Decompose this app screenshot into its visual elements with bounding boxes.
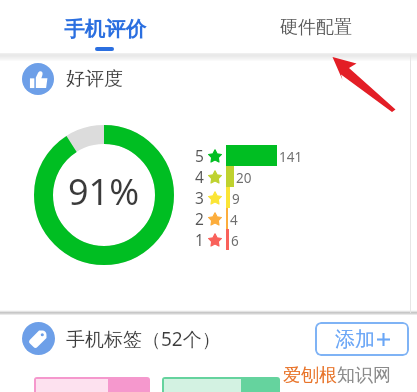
staticText: 20 xyxy=(236,169,252,187)
staticText: 5 xyxy=(195,145,204,166)
staticText: 91% xyxy=(68,167,140,216)
staticText: 3 xyxy=(195,187,204,208)
staticText: 硬件配置 xyxy=(280,16,352,39)
staticText: 手机评价 xyxy=(64,16,146,42)
staticText: 4 xyxy=(195,166,204,187)
staticText: 4 xyxy=(230,211,238,229)
staticText: 9 xyxy=(232,190,240,208)
button[interactable]: 硬件配置 xyxy=(209,0,417,53)
staticText: 手机标签（52个） xyxy=(66,326,221,352)
button[interactable]: 添加 xyxy=(315,322,409,356)
staticText: 知识网 xyxy=(337,364,391,387)
staticText: 爱刨根 xyxy=(283,364,337,387)
staticText: 1 xyxy=(195,229,204,250)
staticText: 2 xyxy=(195,208,204,229)
button[interactable]: 手机评价 xyxy=(0,0,209,53)
staticText: 好评度 xyxy=(66,67,123,91)
staticText: 141 xyxy=(279,148,303,166)
button[interactable] xyxy=(34,377,150,392)
button[interactable] xyxy=(162,377,280,392)
staticText: 添加 xyxy=(335,327,375,352)
staticText: 6 xyxy=(231,232,239,250)
